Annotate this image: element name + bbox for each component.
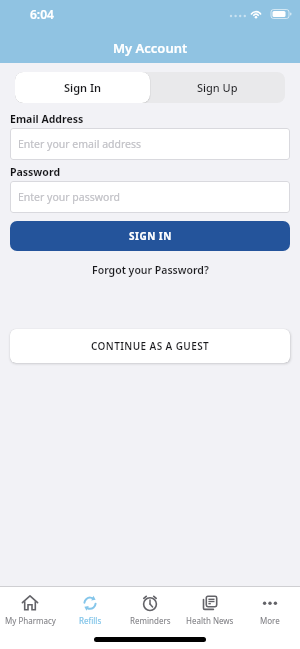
button[interactable]: CONTINUE AS A GUEST [10,329,290,363]
button[interactable]: Forgot your Password? [92,263,209,277]
button[interactable]: Enter your email address [10,128,290,160]
button[interactable]: Reminders [120,587,180,631]
staticText: Refills [79,615,102,626]
staticText: My Pharmacy [5,615,56,626]
staticText: More [260,615,280,626]
button[interactable]: Enter your password [10,181,290,213]
button[interactable]: More [240,587,300,631]
button[interactable]: My Pharmacy [0,587,60,631]
button[interactable]: Sign Up [150,72,285,103]
staticText: Sign Up [197,80,238,95]
staticText: Enter your password [18,190,120,204]
staticText: 6:04 [30,6,54,22]
staticText: Reminders [130,615,171,626]
staticText: SIGN IN [129,229,172,243]
staticText: Password [10,165,61,179]
staticText: Enter your email address [18,137,142,151]
button[interactable]: Sign In [15,72,150,103]
staticText: My Account [113,39,188,57]
staticText: CONTINUE AS A GUEST [91,339,210,353]
button[interactable]: SIGN IN [10,221,290,251]
staticText: Sign In [64,80,102,95]
staticText: Email Address [10,112,84,126]
button[interactable]: Refills [60,587,120,631]
button[interactable]: Health News [180,587,240,631]
staticText: Health News [186,615,234,626]
